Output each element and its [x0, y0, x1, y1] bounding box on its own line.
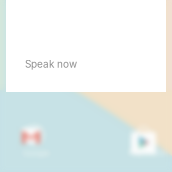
- button[interactable]: Google: [21, 123, 46, 147]
- staticText: Play Store: [128, 148, 166, 158]
- staticText: Speak now: [25, 58, 77, 70]
- button[interactable]: Speak now: [6, 0, 166, 92]
- button[interactable]: Play Store: [131, 124, 156, 154]
